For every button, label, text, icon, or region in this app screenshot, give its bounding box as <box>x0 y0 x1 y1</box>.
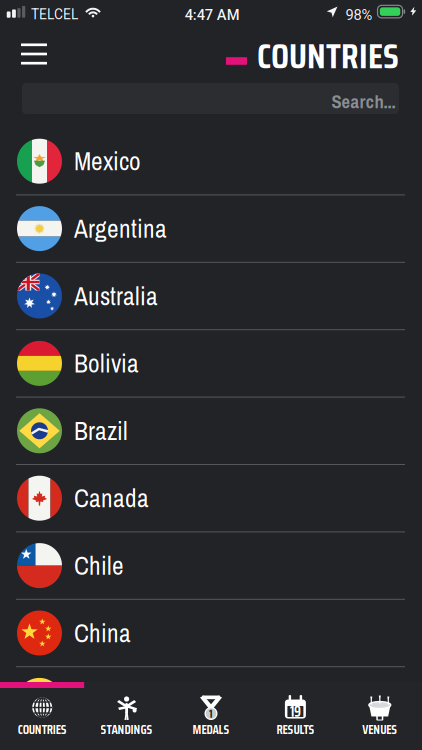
button[interactable]: Brazil <box>0 398 422 465</box>
staticText: RESULTS <box>276 719 314 739</box>
button[interactable]: 1 <box>169 688 253 750</box>
staticText: VENUES <box>362 719 397 739</box>
button[interactable]: Menu <box>12 32 56 76</box>
staticText: Canada <box>74 481 149 515</box>
button[interactable]: Bolivia <box>0 330 422 398</box>
staticText: 98% <box>345 6 372 24</box>
staticText: TELCEL <box>31 6 78 22</box>
button[interactable]: Mexico <box>0 128 422 195</box>
staticText: Argentina <box>74 211 167 246</box>
staticText: China <box>74 616 131 650</box>
button[interactable]: 19 <box>253 688 338 750</box>
staticText: COUNTRIES <box>257 28 399 84</box>
button[interactable]: Search... <box>22 83 399 114</box>
staticText: 4:47 AM <box>185 6 240 24</box>
staticText: 19 <box>290 700 301 723</box>
staticText: STANDINGS <box>101 719 153 739</box>
staticText: Brazil <box>74 414 128 448</box>
button[interactable]: Canada <box>0 465 422 532</box>
staticText: Colombia <box>74 683 165 717</box>
staticText: Bolivia <box>74 346 139 380</box>
staticText: MEDALS <box>192 719 229 739</box>
button[interactable]: COUNTRIES <box>0 688 84 750</box>
button[interactable]: Australia <box>0 263 422 330</box>
button[interactable]: Argentina <box>0 195 422 263</box>
staticText: Chile <box>74 548 124 583</box>
button[interactable]: China <box>0 600 422 667</box>
button[interactable]: Colombia <box>0 667 422 735</box>
staticText: Mexico <box>74 144 141 178</box>
button[interactable]: VENUES <box>338 688 422 750</box>
staticText: COUNTRIES <box>18 719 67 739</box>
button[interactable]: STANDINGS <box>84 688 169 750</box>
staticText: Australia <box>74 279 158 313</box>
staticText: Search... <box>331 89 395 114</box>
staticText: 1 <box>209 704 213 723</box>
button[interactable]: Chile <box>0 532 422 600</box>
